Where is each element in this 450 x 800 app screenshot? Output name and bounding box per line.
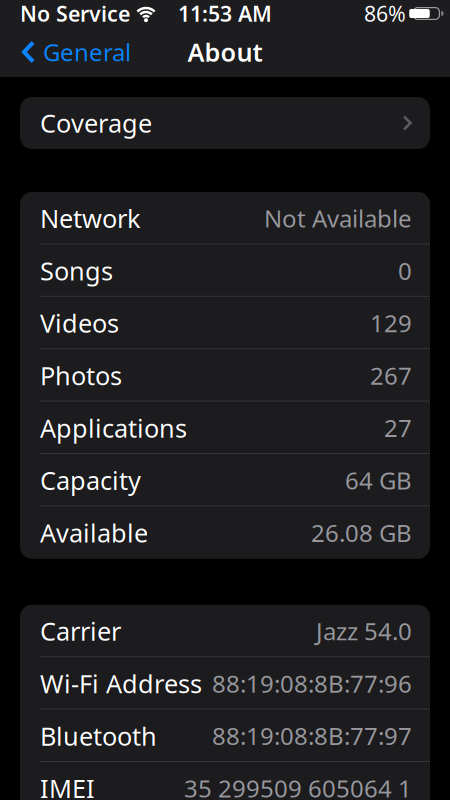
staticText: 86% xyxy=(364,0,406,28)
staticText: 11:53 AM xyxy=(178,0,272,28)
staticText: 88:19:08:8B:77:97 xyxy=(212,720,412,752)
staticText: 129 xyxy=(370,307,412,339)
staticText: Not Available xyxy=(264,202,412,234)
staticText: Bluetooth xyxy=(40,719,157,753)
staticText: Coverage xyxy=(40,106,152,140)
staticText: 0 xyxy=(398,255,412,287)
staticText: Wi-Fi Address xyxy=(40,667,202,700)
staticText: Songs xyxy=(40,254,113,287)
staticText: 26.08 GB xyxy=(311,517,412,549)
staticText: IMEI xyxy=(40,771,95,800)
staticText: 267 xyxy=(370,359,412,391)
staticText: Carrier xyxy=(40,614,121,648)
button[interactable]: Back xyxy=(22,36,131,68)
staticText: General xyxy=(43,36,131,68)
button[interactable]: Coverage xyxy=(20,97,430,149)
staticText: Capacity xyxy=(40,463,141,497)
staticText: No Service xyxy=(20,0,130,28)
staticText: 27 xyxy=(384,412,412,444)
staticText: Network xyxy=(40,201,141,235)
staticText: Videos xyxy=(40,306,119,340)
staticText: 64 GB xyxy=(345,464,412,496)
staticText: 35 299509 605064 1 xyxy=(184,772,412,800)
staticText: 88:19:08:8B:77:96 xyxy=(212,667,412,699)
staticText: About xyxy=(187,35,262,69)
staticText: Applications xyxy=(40,411,187,445)
staticText: Jazz 54.0 xyxy=(316,615,412,647)
staticText: Photos xyxy=(40,359,122,392)
staticText: Available xyxy=(40,516,148,549)
